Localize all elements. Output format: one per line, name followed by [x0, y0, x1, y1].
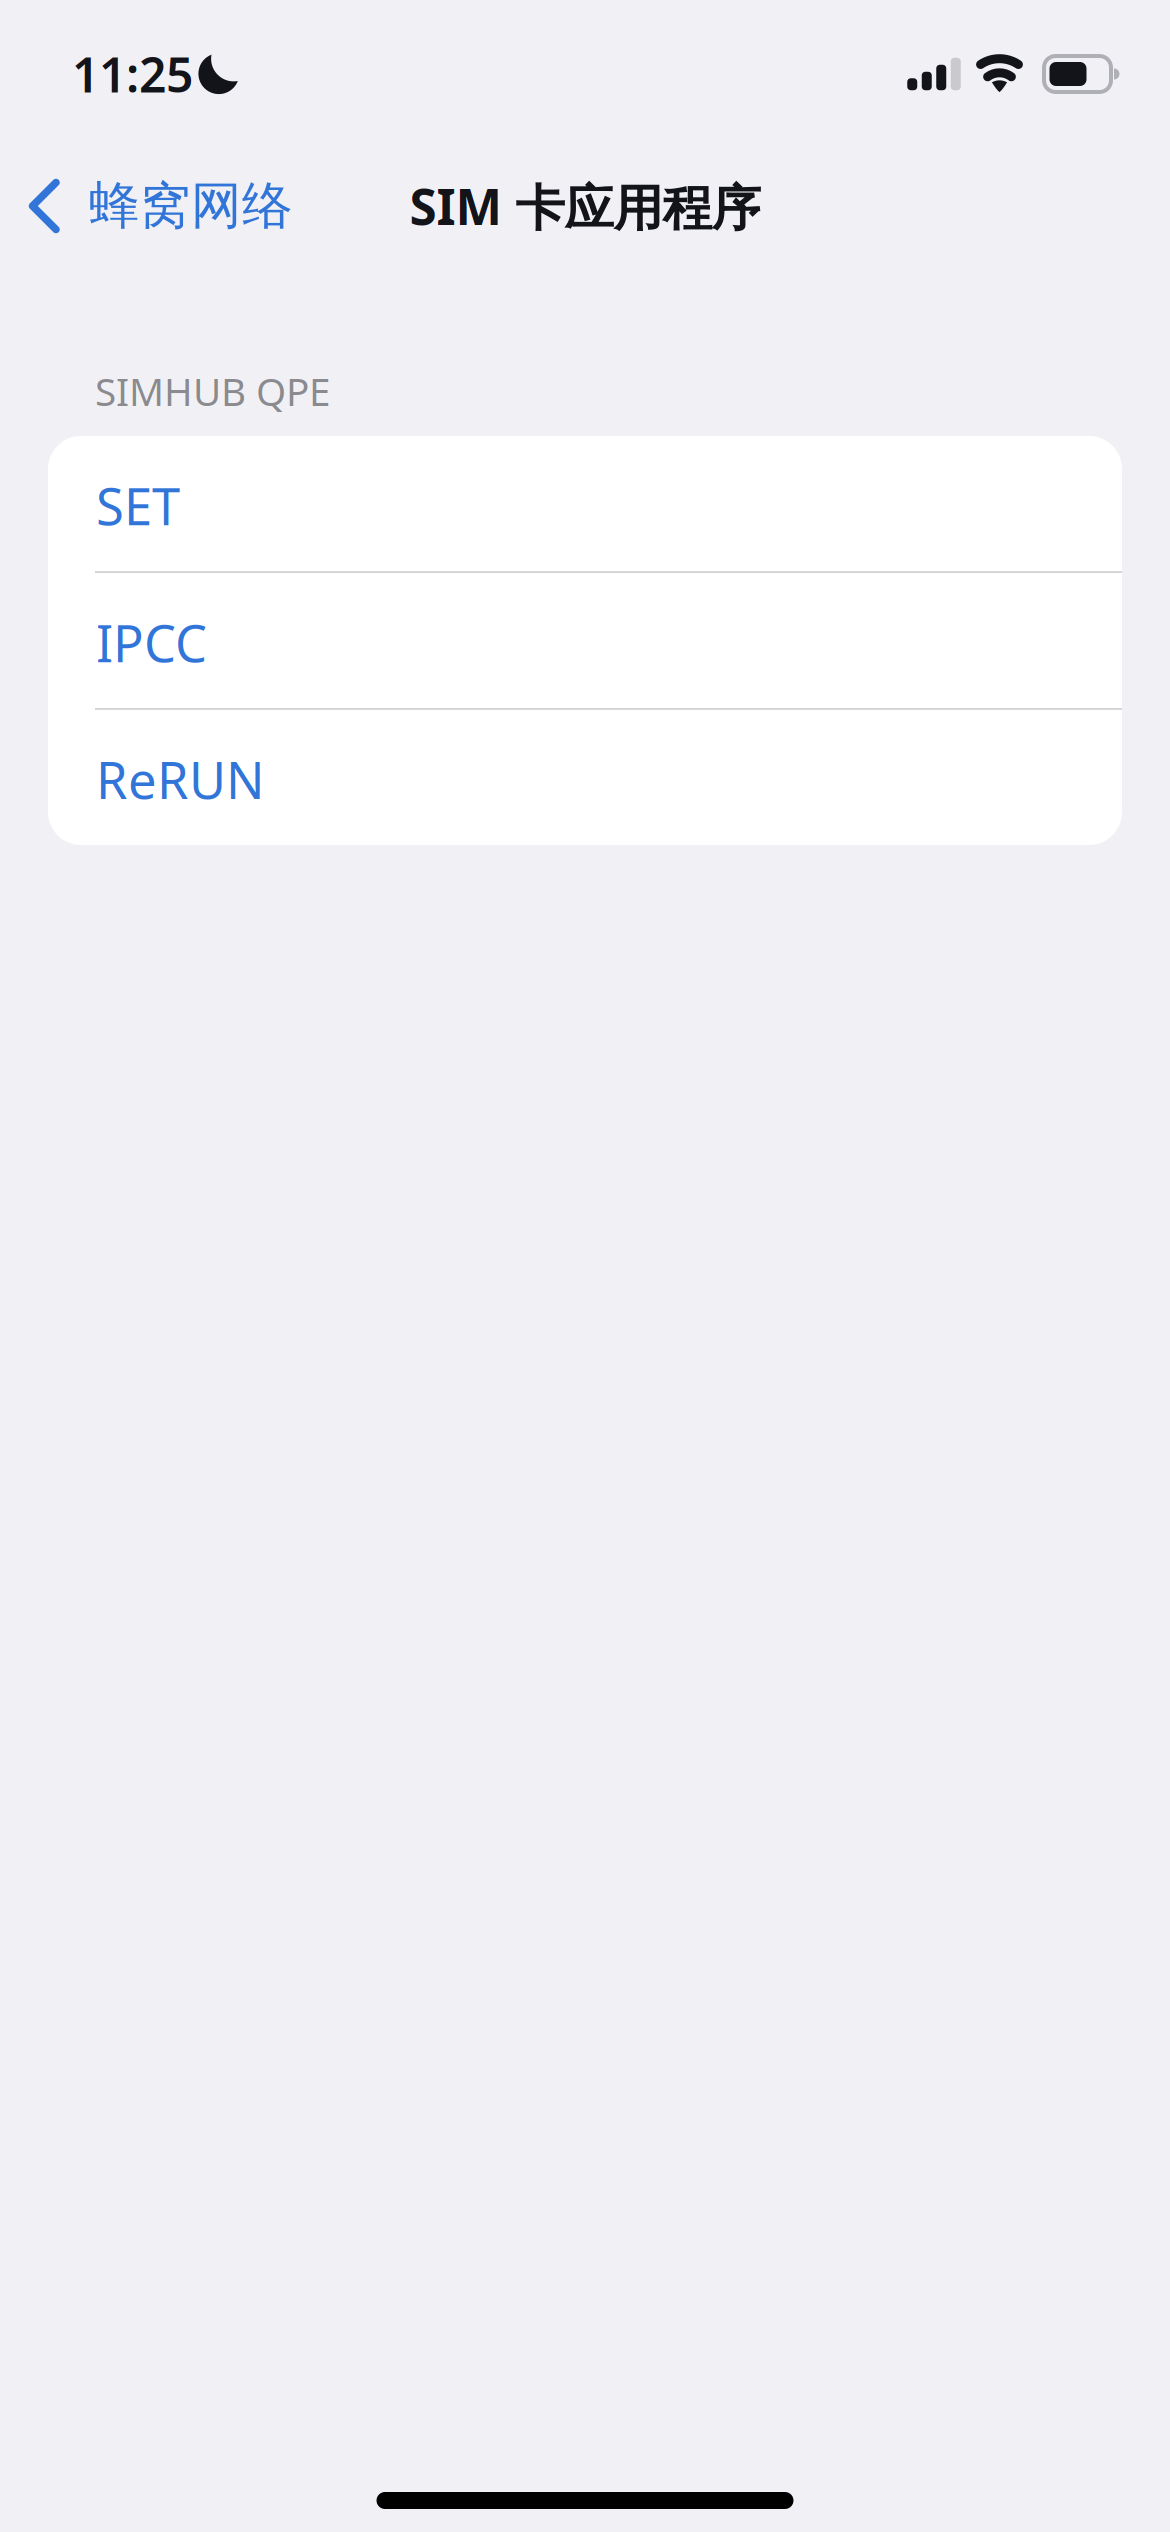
button[interactable]: SET — [48, 436, 1122, 571]
staticText: ReRUN — [96, 746, 265, 813]
button[interactable]: IPCC — [48, 573, 1122, 708]
staticText: IPCC — [96, 609, 207, 676]
staticText: 11:25 — [72, 42, 193, 106]
staticText: SIM 卡应用程序 — [409, 173, 760, 239]
button[interactable]: ReRUN — [48, 710, 1122, 845]
button[interactable]: 返回 蜂窝网络 — [0, 154, 420, 258]
staticText: SIMHUB QPE — [95, 365, 330, 417]
staticText: 蜂窝网络 — [89, 175, 293, 237]
staticText: SET — [96, 472, 180, 539]
